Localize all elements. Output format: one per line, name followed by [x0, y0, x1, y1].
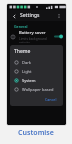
button[interactable]: More options — [55, 12, 63, 20]
staticText: Cancel — [45, 97, 57, 102]
staticText: Settings — [20, 12, 40, 19]
button[interactable]: Wallpaper based — [14, 85, 59, 94]
button[interactable]: System — [14, 76, 59, 85]
button[interactable]: Battery saver — [7, 30, 66, 43]
staticText: Customise — [18, 128, 54, 138]
staticText: Light — [22, 69, 32, 74]
staticText: Wallpaper based — [22, 87, 54, 92]
button[interactable]: Cancel — [43, 96, 59, 103]
staticText: Battery saver — [19, 30, 46, 36]
staticText: Dark — [22, 60, 31, 65]
staticText: System — [22, 78, 36, 83]
staticText: Theme — [14, 48, 31, 55]
button[interactable]: Light — [14, 67, 59, 76]
button[interactable]: Back — [10, 12, 18, 20]
staticText: Limits background activity — [19, 37, 52, 43]
button[interactable]: Dark — [14, 58, 59, 67]
button[interactable]: Toggle battery saver — [54, 34, 63, 39]
staticText: General — [14, 24, 28, 29]
